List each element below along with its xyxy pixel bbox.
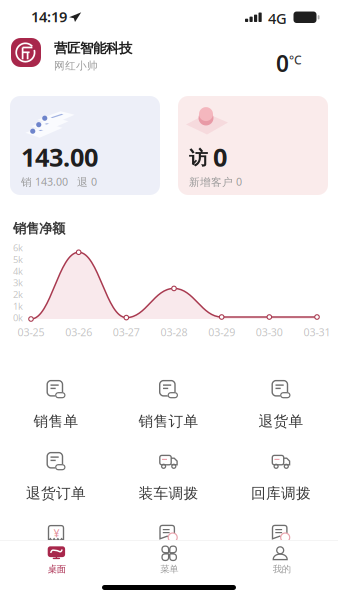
button[interactable]: 装车调拨 bbox=[130, 446, 206, 500]
button[interactable]: 退货单 bbox=[243, 374, 319, 428]
staticText: ¥ bbox=[53, 526, 59, 540]
button[interactable]: 桌面 bbox=[29, 540, 85, 582]
staticText: 03-26 bbox=[65, 325, 92, 339]
staticText: 3k bbox=[13, 276, 23, 289]
staticText: 0 bbox=[213, 140, 227, 174]
staticText: 营匠智能科技 bbox=[54, 40, 132, 56]
staticText: 装车调拨 bbox=[138, 484, 198, 502]
staticText: 03-25 bbox=[17, 325, 44, 339]
staticText: 退货单 bbox=[258, 412, 303, 430]
button[interactable]: 我的 bbox=[254, 540, 310, 582]
staticText: 0k bbox=[13, 311, 23, 324]
staticText: 03-29 bbox=[208, 325, 235, 339]
staticText: 03-27 bbox=[113, 325, 140, 339]
staticText: 4k bbox=[13, 265, 23, 277]
staticText: 6k bbox=[13, 241, 23, 254]
staticText: 14:19 bbox=[31, 7, 67, 26]
staticText: °C bbox=[289, 52, 302, 68]
staticText: 桌面 bbox=[48, 563, 66, 575]
staticText: 03-30 bbox=[256, 325, 283, 339]
staticText: 收款单 bbox=[33, 556, 78, 574]
staticText: 退款单 bbox=[258, 556, 303, 574]
button[interactable]: 退款单 bbox=[243, 518, 319, 572]
button[interactable]: 对账单 bbox=[130, 518, 206, 572]
button[interactable]: 回库调拨 bbox=[243, 446, 319, 500]
staticText: 对账单 bbox=[146, 556, 191, 574]
button[interactable]: 143.00 bbox=[10, 96, 160, 195]
staticText: 新增客户 0 bbox=[189, 175, 242, 189]
staticText: 5k bbox=[13, 253, 23, 266]
staticText: 网红小帅 bbox=[54, 59, 98, 72]
staticText: 4G bbox=[268, 9, 287, 28]
staticText: 我的 bbox=[273, 563, 291, 575]
staticText: 03-31 bbox=[303, 325, 330, 339]
staticText: 销 143.00 退 0 bbox=[21, 175, 97, 189]
staticText: 0 bbox=[276, 48, 289, 78]
button[interactable]: 销售单 bbox=[18, 374, 94, 428]
staticText: 销售订单 bbox=[138, 412, 198, 430]
staticText: 143.00 bbox=[21, 140, 98, 174]
button[interactable]: 退货订单 bbox=[18, 446, 94, 500]
button[interactable]: 访 bbox=[178, 96, 328, 195]
button[interactable]: 销售订单 bbox=[130, 374, 206, 428]
staticText: 1k bbox=[13, 300, 23, 312]
staticText: 销售净额 bbox=[13, 220, 65, 237]
staticText: 2k bbox=[13, 288, 23, 301]
button[interactable]: 菜单 bbox=[141, 540, 197, 582]
staticText: 03-28 bbox=[160, 325, 187, 339]
staticText: 菜单 bbox=[160, 563, 178, 575]
staticText: 访 bbox=[189, 146, 208, 169]
button[interactable]: ¥ bbox=[18, 518, 94, 572]
staticText: 销售单 bbox=[33, 412, 78, 430]
staticText: 退货订单 bbox=[26, 484, 86, 502]
staticText: 回库调拨 bbox=[251, 484, 311, 502]
